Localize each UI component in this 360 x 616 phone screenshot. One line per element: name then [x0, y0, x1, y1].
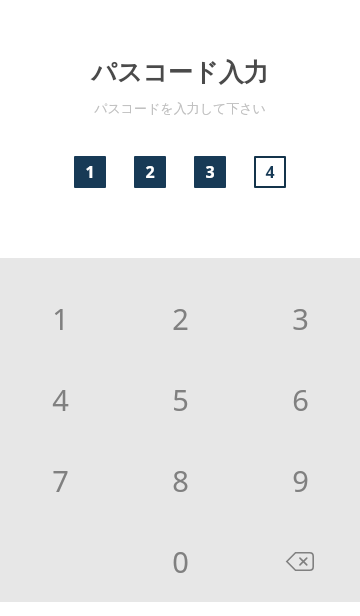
staticText: 4: [52, 380, 69, 419]
staticText: 7: [52, 461, 69, 500]
staticText: 4: [265, 161, 275, 183]
button[interactable]: 6: [240, 359, 360, 440]
button[interactable]: 1: [74, 156, 106, 188]
staticText: 3: [205, 161, 215, 183]
staticText: パスコード入力: [91, 57, 269, 88]
staticText: 2: [172, 299, 189, 338]
staticText: 0: [172, 542, 189, 581]
button[interactable]: 2: [120, 278, 240, 359]
button[interactable]: 4: [0, 359, 120, 440]
button[interactable]: 9: [240, 440, 360, 521]
button[interactable]: 0: [120, 521, 240, 602]
button[interactable]: 2: [134, 156, 166, 188]
staticText: 1: [85, 161, 95, 183]
button[interactable]: 5: [120, 359, 240, 440]
staticText: 1: [52, 299, 69, 338]
staticText: 5: [172, 380, 189, 419]
staticText: パスコードを入力して下さい: [94, 100, 266, 116]
staticText: 6: [292, 380, 309, 419]
button[interactable]: Backspace: [240, 521, 360, 602]
button[interactable]: 4: [254, 156, 286, 188]
button[interactable]: 8: [120, 440, 240, 521]
staticText: 3: [292, 299, 309, 338]
button[interactable]: 7: [0, 440, 120, 521]
staticText: 2: [145, 161, 155, 183]
staticText: 8: [172, 461, 189, 500]
button[interactable]: 3: [194, 156, 226, 188]
button[interactable]: 3: [240, 278, 360, 359]
button[interactable]: 1: [0, 278, 120, 359]
staticText: 9: [292, 461, 309, 500]
